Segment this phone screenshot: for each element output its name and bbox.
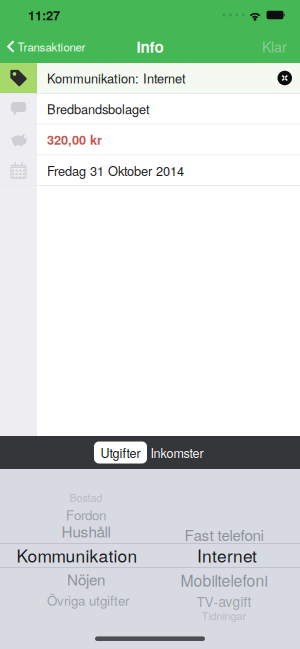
- staticText: Hushåll: [61, 520, 110, 542]
- staticText: Internet: [197, 543, 257, 567]
- staticText: Kommunikation: Internet: [47, 69, 186, 87]
- staticText: Inkomster: [150, 443, 203, 461]
- button[interactable]: Clear category: [277, 71, 292, 85]
- staticText: Info: [136, 36, 163, 57]
- button[interactable]: Klar: [262, 28, 300, 64]
- staticText: Övriga utgifter: [47, 590, 129, 610]
- button[interactable]: 320,00 kr: [0, 125, 300, 155]
- button[interactable]: Inkomster: [148, 441, 206, 463]
- staticText: 11:27: [28, 6, 60, 24]
- staticText: Kommunikation: [16, 543, 137, 567]
- button[interactable]: Bredbandsbolaget: [0, 94, 300, 124]
- button[interactable]: Kommunikation: Internet: [0, 63, 300, 93]
- staticText: TV-avgift: [196, 591, 251, 611]
- button[interactable]: Utgifter: [94, 441, 147, 463]
- staticText: Bredbandsbolaget: [47, 100, 150, 118]
- button[interactable]: Fredag 31 Oktober 2014: [0, 155, 300, 185]
- staticText: Fredag 31 Oktober 2014: [47, 161, 184, 179]
- staticText: Bostad: [69, 490, 102, 505]
- staticText: Fast telefoni: [184, 524, 263, 545]
- staticText: Nöjen: [67, 568, 105, 590]
- staticText: Utgifter: [100, 443, 140, 461]
- staticText: Fordon: [66, 505, 106, 524]
- staticText: Klar: [262, 36, 287, 56]
- staticText: 320,00 kr: [47, 130, 102, 149]
- staticText: Tidningar: [201, 608, 246, 623]
- staticText: Mobiltelefoni: [180, 569, 267, 591]
- staticText: Transaktioner: [17, 38, 85, 55]
- button[interactable]: Transaktioner: [0, 30, 85, 63]
